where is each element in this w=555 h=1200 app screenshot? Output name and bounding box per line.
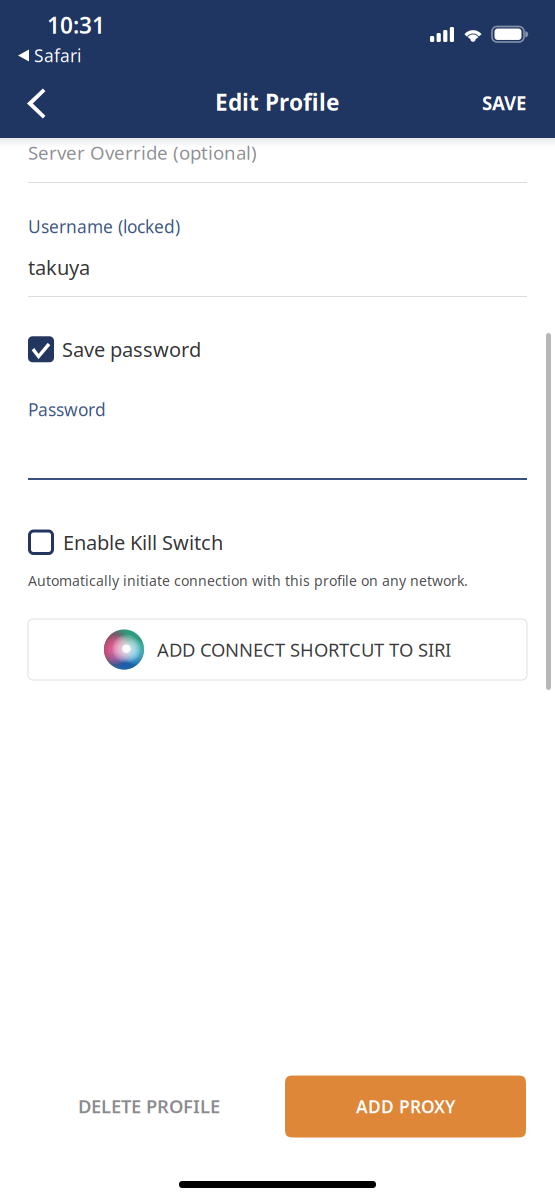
button[interactable]: SAVE [453, 74, 555, 131]
staticText: takuya [28, 254, 90, 281]
button[interactable]: ADD CONNECT SHORTCUT TO SIRI [28, 619, 527, 680]
staticText: Username (locked) [28, 215, 180, 238]
button[interactable]: Back [0, 74, 72, 133]
staticText: Edit Profile [215, 87, 340, 117]
staticText: 10:31 [47, 10, 105, 40]
staticText: Automatically initiate connection with t… [28, 571, 468, 590]
staticText: SAVE [482, 90, 526, 115]
button[interactable]: DELETE PROFILE [56, 1073, 242, 1139]
button[interactable]: Enable Kill Switch [28, 529, 527, 556]
staticText: Password [28, 398, 106, 421]
staticText: Save password [62, 336, 201, 363]
button[interactable]: Save password [28, 336, 527, 363]
staticText: Enable Kill Switch [63, 529, 223, 556]
staticText: ADD CONNECT SHORTCUT TO SIRI [157, 637, 451, 662]
staticText: Safari [34, 44, 81, 67]
button[interactable]: ADD PROXY [285, 1075, 526, 1137]
staticText: ADD PROXY [356, 1095, 455, 1118]
staticText: DELETE PROFILE [78, 1093, 220, 1119]
staticText: Server Override (optional) [28, 140, 257, 165]
